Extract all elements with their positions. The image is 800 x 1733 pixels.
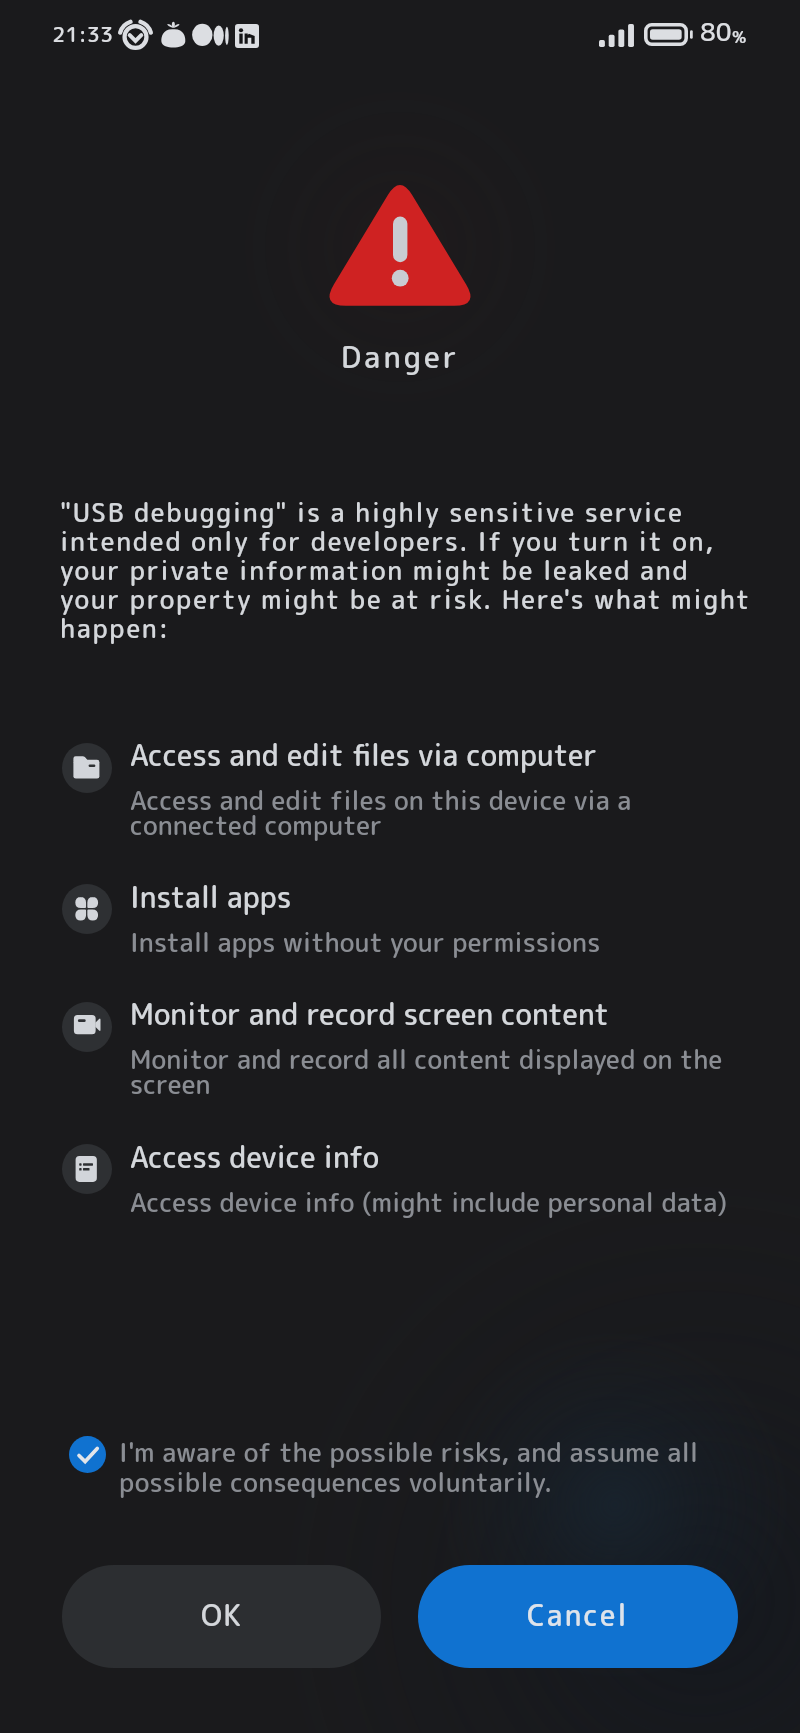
staticText: Install apps without your permissions bbox=[130, 924, 601, 960]
other: Battery bbox=[644, 23, 694, 46]
staticText: 80 bbox=[700, 20, 732, 48]
staticText: % bbox=[732, 28, 747, 48]
other: Focus timer bbox=[160, 21, 187, 49]
staticText: Monitor and record screen content bbox=[130, 1001, 609, 1033]
button[interactable]: Access device info bbox=[130, 1144, 740, 1220]
button[interactable]: OK bbox=[62, 1565, 381, 1668]
other: Alarm bbox=[119, 21, 152, 50]
button[interactable]: I'm aware of the possible risks, and ass… bbox=[119, 1439, 739, 1499]
button[interactable]: Access and edit files via computer bbox=[130, 742, 740, 843]
button[interactable]: Monitor and record screen content bbox=[62, 1002, 112, 1052]
staticText: Monitor and record all content displayed… bbox=[130, 1041, 740, 1102]
other: Signal strength bbox=[599, 24, 634, 47]
staticText: Cancel bbox=[527, 1600, 629, 1634]
staticText: Danger bbox=[341, 341, 460, 377]
staticText: "USB debugging" is a highly sensitive se… bbox=[60, 500, 754, 645]
button[interactable]: Install apps bbox=[62, 884, 112, 934]
staticText: Install apps bbox=[130, 884, 292, 916]
button[interactable]: Cancel bbox=[418, 1565, 738, 1668]
button[interactable]: I'm aware of the possible risks bbox=[69, 1436, 106, 1473]
other: Media bbox=[192, 23, 230, 47]
staticText: Access device info bbox=[130, 1144, 380, 1176]
button[interactable]: Install apps bbox=[130, 884, 740, 960]
staticText: Access device info (might include person… bbox=[130, 1184, 728, 1220]
staticText: I'm aware of the possible risks, and ass… bbox=[119, 1439, 739, 1499]
staticText: OK bbox=[201, 1600, 243, 1634]
button[interactable]: Access device info bbox=[62, 1144, 112, 1194]
staticText: 21:33 bbox=[52, 24, 114, 48]
button[interactable]: Access and edit files via computer bbox=[62, 743, 112, 793]
staticText: Access and edit files via computer bbox=[130, 742, 597, 774]
staticText: Access and edit files on this device via… bbox=[130, 782, 740, 843]
other: LinkedIn bbox=[235, 24, 259, 48]
button[interactable]: Monitor and record screen content bbox=[130, 1001, 740, 1102]
